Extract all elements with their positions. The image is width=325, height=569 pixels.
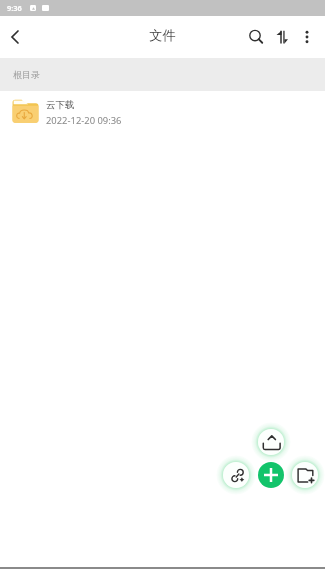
staticText: 2022-12-20 09:36: [46, 114, 122, 127]
button[interactable]: Add link: [223, 462, 249, 488]
button[interactable]: More options: [294, 24, 320, 50]
staticText: 云下载: [46, 99, 75, 111]
button[interactable]: New folder: [292, 462, 318, 488]
button[interactable]: Upload: [258, 429, 284, 455]
button[interactable]: Search: [243, 24, 269, 50]
staticText: 根目录: [13, 69, 40, 80]
staticText: 9:36: [7, 3, 22, 13]
button[interactable]: 云下载: [0, 91, 325, 133]
staticText: 文件: [149, 27, 176, 44]
button[interactable]: Back: [2, 24, 28, 50]
button[interactable]: Add: [258, 462, 284, 488]
button[interactable]: Sort: [268, 24, 294, 50]
